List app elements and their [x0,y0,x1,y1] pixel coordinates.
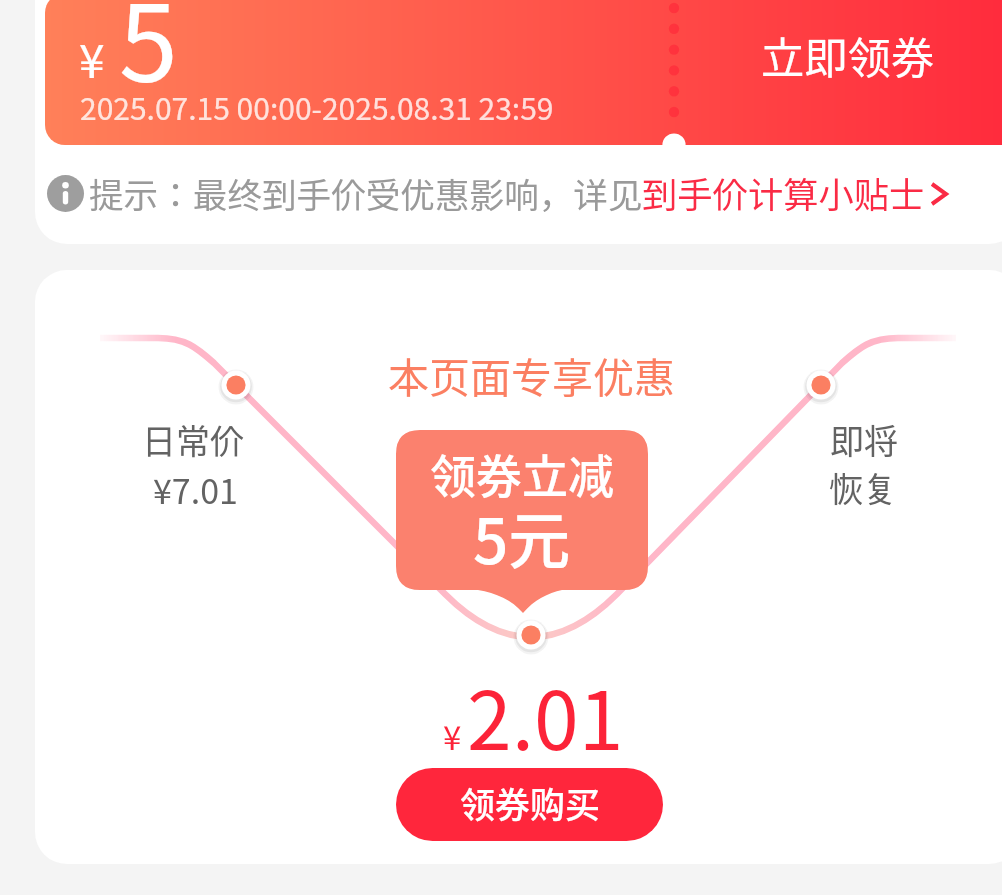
staticText: 提示：最终到手价受优惠影响，详见 [89,168,643,218]
staticText: 到手价计算小贴士 [642,167,925,218]
other: Info [45,168,965,224]
staticText: 5 [119,0,178,111]
staticText: 日常价 [142,415,244,464]
staticText: 领券购买 [460,777,601,828]
staticText: 立即领券 [761,24,935,87]
staticText: ¥7.01 [153,465,238,514]
button[interactable]: ¥ [45,0,1002,145]
staticText: ¥ [443,712,462,760]
staticText: ¥ [79,25,105,92]
staticText: 2025.07.15 00:00-2025.08.31 23:59 [80,85,554,128]
staticText: 即将 [830,415,898,464]
staticText: 2.01 [467,657,624,774]
button[interactable]: Info [45,168,965,224]
staticText: 本页面专享优惠 [388,345,675,404]
staticText: 领券立减 [430,440,614,507]
staticText: 5元 [473,492,571,582]
button[interactable]: 领券购买 [396,768,663,841]
staticText: 恢复 [829,463,897,512]
